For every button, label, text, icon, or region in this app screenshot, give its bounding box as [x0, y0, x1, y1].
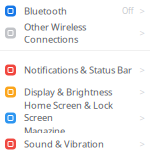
button[interactable]: Sound & Vibration: [0, 133, 150, 150]
staticText: Home Screen & Lock Screen: [24, 99, 113, 124]
staticText: Off: [122, 6, 134, 16]
staticText: Bluetooth: [24, 5, 67, 17]
staticText: Display & Brightness: [24, 86, 112, 98]
staticText: >: [139, 5, 144, 17]
button[interactable]: Other Wireless Connections: [0, 22, 150, 44]
button[interactable]: Display & Brightness: [0, 81, 150, 103]
staticText: >: [139, 64, 144, 76]
staticText: >: [139, 27, 144, 39]
button[interactable]: Home Screen & Lock Screen: [0, 103, 150, 133]
staticText: >: [139, 138, 144, 150]
staticText: >: [139, 86, 144, 98]
staticText: Magazine: [24, 125, 65, 137]
button[interactable]: Notifications & Status Bar: [0, 59, 150, 81]
staticText: Other Wireless Connections: [24, 21, 86, 45]
staticText: Sound & Vibration: [24, 138, 104, 150]
button[interactable]: Bluetooth: [0, 0, 150, 22]
staticText: >: [139, 112, 144, 124]
staticText: Notifications & Status Bar: [24, 64, 132, 76]
